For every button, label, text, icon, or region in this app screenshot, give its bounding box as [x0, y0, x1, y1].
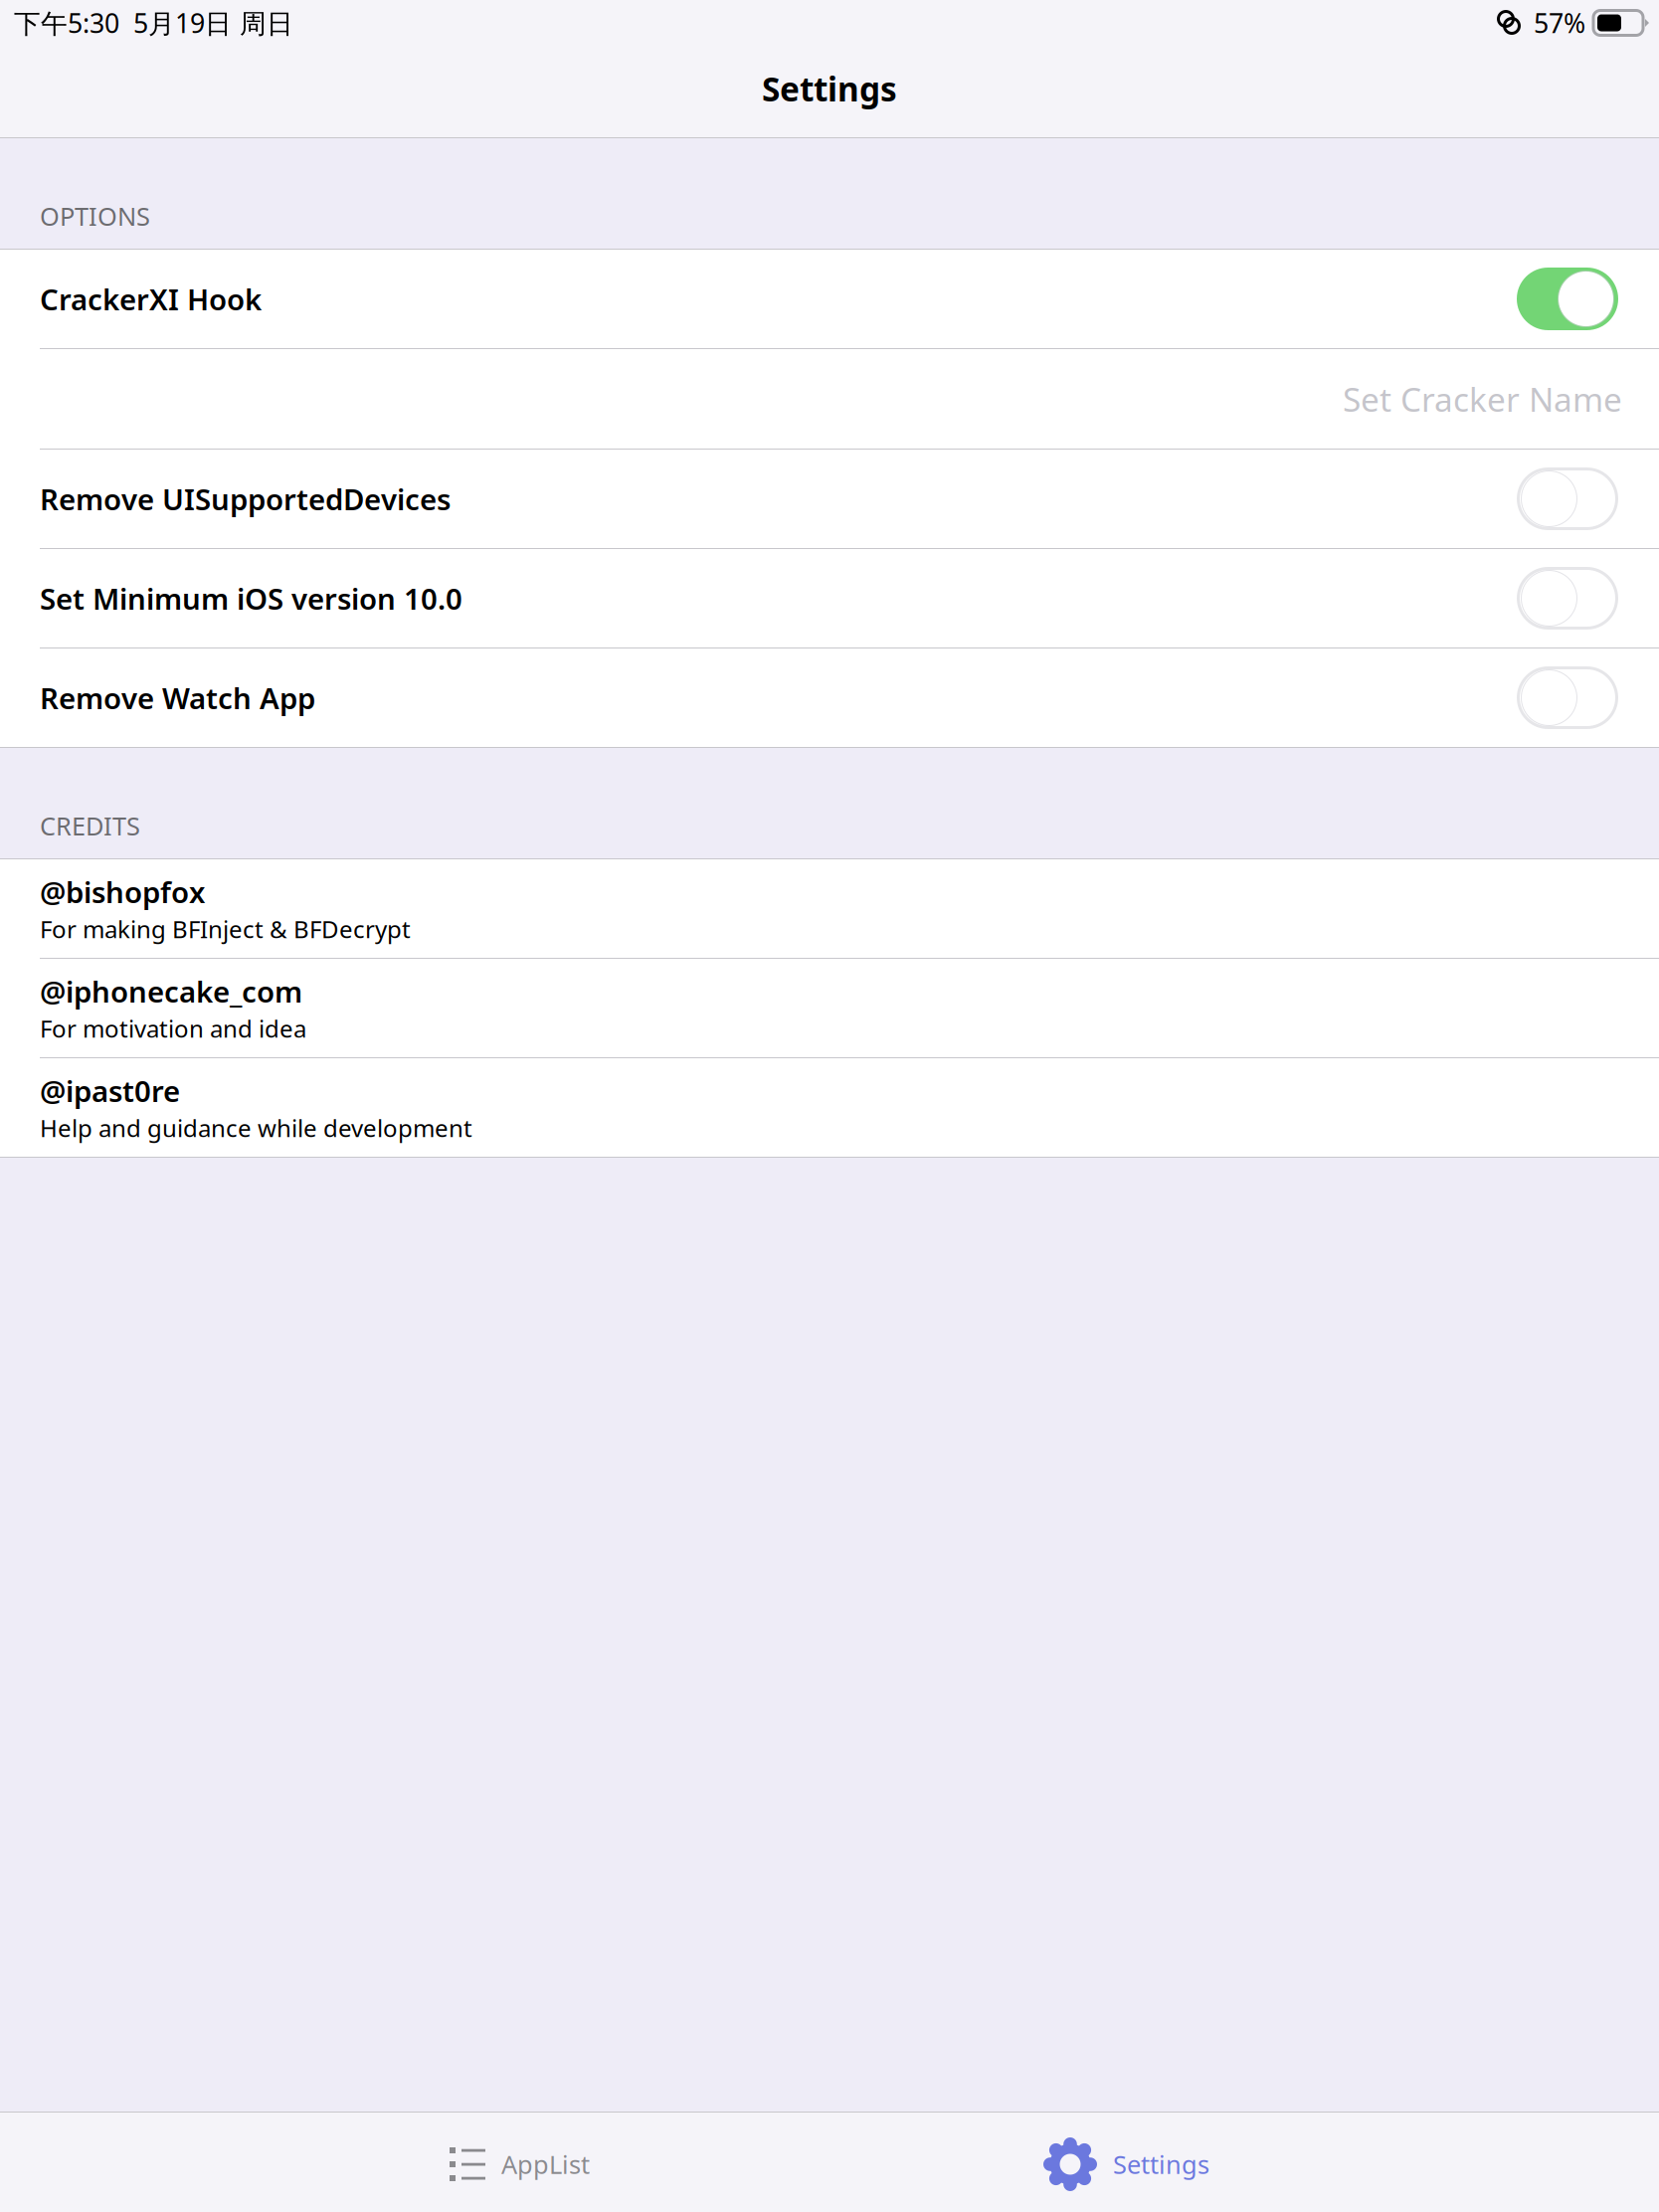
staticText: 下午5:30 5月19日 周日 — [14, 5, 293, 40]
staticText: CREDITS — [40, 809, 140, 842]
staticText: For motivation and idea — [40, 1013, 306, 1044]
button[interactable]: AppList — [430, 2113, 610, 2212]
button[interactable]: On — [1517, 268, 1618, 330]
button[interactable]: Settings — [1023, 2113, 1229, 2212]
staticText: @bishopfox — [40, 872, 205, 911]
staticText: Remove Watch App — [40, 678, 315, 717]
button[interactable]: @iphonecake_com — [0, 959, 1659, 1057]
staticText: OPTIONS — [40, 199, 150, 233]
staticText: Settings — [762, 67, 897, 111]
staticText: AppList — [501, 2148, 590, 2181]
staticText: For making BFInject & BFDecrypt — [40, 913, 411, 945]
staticText: 57% — [1534, 5, 1585, 40]
staticText: Help and guidance while development — [40, 1112, 472, 1144]
staticText: @iphonecake_com — [40, 972, 302, 1011]
staticText: Settings — [1113, 2148, 1209, 2181]
staticText: CrackerXI Hook — [40, 279, 262, 318]
button[interactable]: Set Cracker Name — [0, 349, 1659, 449]
button[interactable]: Off — [1517, 666, 1618, 729]
button[interactable]: @bishopfox — [0, 859, 1659, 958]
staticText: Remove UISupportedDevices — [40, 479, 451, 518]
staticText: @ipast0re — [40, 1071, 180, 1110]
button[interactable]: Off — [1517, 467, 1618, 530]
button[interactable]: Off — [1517, 567, 1618, 630]
button[interactable]: @ipast0re — [0, 1058, 1659, 1157]
staticText: Set Cracker Name — [1343, 377, 1622, 421]
staticText: Set Minimum iOS version 10.0 — [40, 579, 462, 618]
